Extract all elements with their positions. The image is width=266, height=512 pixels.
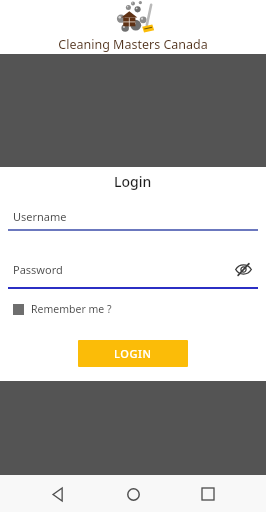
staticText: Login xyxy=(114,172,152,191)
button[interactable]: Password xyxy=(0,242,266,289)
button[interactable]: Recent apps xyxy=(191,477,225,511)
button[interactable]: Remember me ? xyxy=(0,298,266,320)
button[interactable]: Home xyxy=(116,477,150,511)
button[interactable]: Back xyxy=(41,477,75,511)
button[interactable]: LOGIN xyxy=(78,340,188,367)
button[interactable]: Username xyxy=(0,195,266,231)
staticText: Username xyxy=(13,209,256,224)
staticText: LOGIN xyxy=(114,346,152,361)
button[interactable]: Show password xyxy=(230,256,256,282)
staticText: Remember me ? xyxy=(31,302,112,316)
staticText: Password xyxy=(13,262,230,277)
staticText: Cleaning Masters Canada xyxy=(58,36,208,53)
